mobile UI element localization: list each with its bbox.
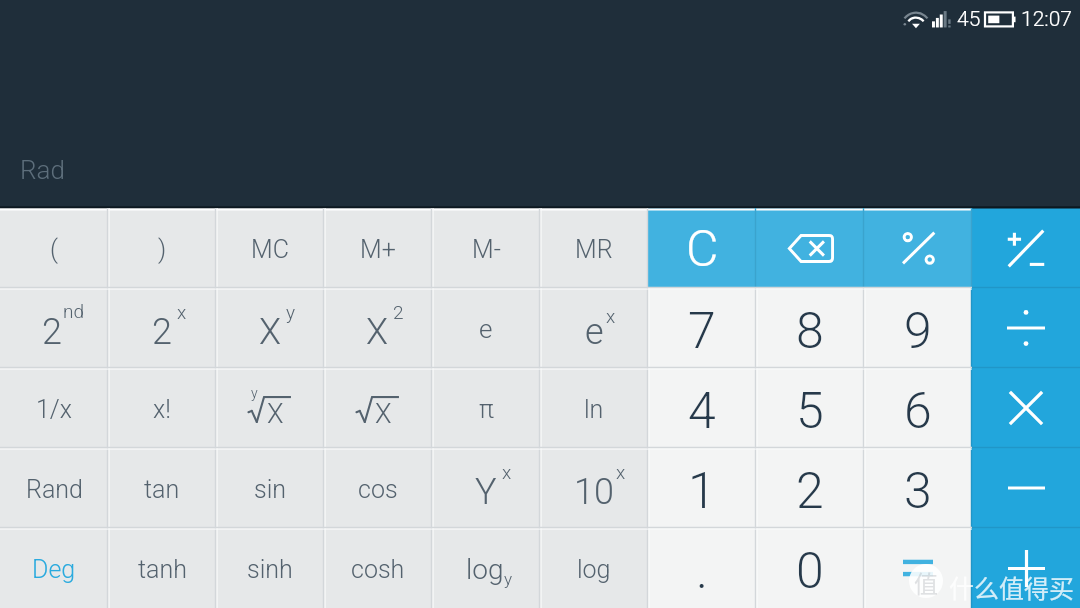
staticText: ln xyxy=(584,395,604,424)
staticText: 8 xyxy=(796,302,824,361)
staticText: cosh xyxy=(351,555,405,584)
button[interactable]: Minus xyxy=(972,448,1080,528)
button[interactable]: 2 xyxy=(756,448,864,528)
staticText: 5 xyxy=(796,382,824,441)
button[interactable]: Plus xyxy=(972,528,1080,608)
staticText: log xyxy=(577,555,611,584)
staticText: 2 xyxy=(796,462,824,521)
staticText: 2 xyxy=(152,311,172,353)
staticText: 9 xyxy=(904,302,932,361)
button[interactable]: e xyxy=(432,288,540,368)
staticText: 0 xyxy=(796,542,824,601)
staticText: X xyxy=(375,398,392,425)
staticText: MC xyxy=(251,235,289,264)
staticText: y xyxy=(251,385,258,401)
button[interactable]: X xyxy=(324,288,432,368)
staticText: Deg xyxy=(32,555,76,584)
button[interactable]: cosh xyxy=(324,528,432,608)
staticText: log xyxy=(466,553,504,586)
button[interactable]: sinh xyxy=(216,528,324,608)
staticText: 7 xyxy=(688,302,716,361)
button[interactable]: 4 xyxy=(648,368,756,448)
staticText: Rad xyxy=(20,155,65,185)
button[interactable]: tanh xyxy=(108,528,216,608)
button[interactable]: ) xyxy=(108,208,216,288)
staticText: y xyxy=(286,301,296,323)
button[interactable]: tan xyxy=(108,448,216,528)
button[interactable]: 2 xyxy=(0,288,108,368)
button[interactable]: log xyxy=(432,528,540,608)
staticText: 1 xyxy=(688,462,716,521)
staticText: 什么值得买 xyxy=(949,569,1075,605)
button[interactable]: Equals xyxy=(864,528,972,608)
button[interactable]: C xyxy=(648,208,756,288)
button[interactable]: Percent xyxy=(864,208,972,288)
button[interactable]: 7 xyxy=(648,288,756,368)
staticText: 值 xyxy=(914,565,938,599)
staticText: 2 xyxy=(42,311,62,353)
button[interactable]: 9 xyxy=(864,288,972,368)
staticText: sinh xyxy=(247,555,293,584)
button[interactable]: Plus minus xyxy=(972,208,1080,288)
button[interactable]: 8 xyxy=(756,288,864,368)
button[interactable]: 1 xyxy=(648,448,756,528)
staticText: π xyxy=(479,395,494,424)
button[interactable]: Backspace xyxy=(756,208,864,288)
staticText: e xyxy=(479,314,493,344)
button[interactable]: Deg xyxy=(0,528,108,608)
button[interactable]: Divide xyxy=(972,288,1080,368)
staticText: 6 xyxy=(904,382,932,441)
staticText: tan xyxy=(144,475,180,504)
staticText: sin xyxy=(254,475,287,504)
staticText: 12:07 xyxy=(1021,7,1073,32)
staticText: x xyxy=(616,461,626,483)
staticText: y xyxy=(504,569,513,589)
button[interactable]: 5 xyxy=(756,368,864,448)
staticText: Rand xyxy=(26,475,83,504)
button[interactable]: 10 xyxy=(540,448,648,528)
button[interactable]: ln xyxy=(540,368,648,448)
button[interactable]: log xyxy=(540,528,648,608)
staticText: X xyxy=(267,398,284,425)
button[interactable]: Square root of X xyxy=(324,368,432,448)
staticText: X xyxy=(259,311,282,353)
button[interactable]: e xyxy=(540,288,648,368)
button[interactable]: M+ xyxy=(324,208,432,288)
button[interactable]: MR xyxy=(540,208,648,288)
button[interactable]: π xyxy=(432,368,540,448)
staticText: e xyxy=(585,311,604,353)
staticText: 4 xyxy=(688,382,716,441)
button[interactable]: sin xyxy=(216,448,324,528)
staticText: M+ xyxy=(360,235,396,264)
button[interactable]: cos xyxy=(324,448,432,528)
button[interactable]: 0 xyxy=(756,528,864,608)
button[interactable]: 3 xyxy=(864,448,972,528)
button[interactable]: x! xyxy=(108,368,216,448)
staticText: nd xyxy=(63,300,85,322)
staticText: C xyxy=(686,220,719,279)
button[interactable]: 1/x xyxy=(0,368,108,448)
button[interactable]: Y xyxy=(432,448,540,528)
button[interactable]: Y-th root of X xyxy=(216,368,324,448)
staticText: tanh xyxy=(138,555,187,584)
staticText: 1/x xyxy=(36,395,72,424)
staticText: x xyxy=(502,461,512,483)
button[interactable]: Rand xyxy=(0,448,108,528)
button[interactable]: 2 xyxy=(108,288,216,368)
button[interactable]: X xyxy=(216,288,324,368)
staticText: X xyxy=(366,311,389,353)
staticText: cos xyxy=(358,475,398,504)
staticText: 10 xyxy=(574,471,614,513)
staticText: 45 xyxy=(957,7,981,32)
staticText: x xyxy=(606,305,616,327)
staticText: ( xyxy=(50,235,58,264)
button[interactable]: . xyxy=(648,528,756,608)
button[interactable]: Multiply xyxy=(972,368,1080,448)
button[interactable]: MC xyxy=(216,208,324,288)
staticText: x! xyxy=(153,395,171,424)
staticText: ) xyxy=(158,235,167,264)
button[interactable]: ( xyxy=(0,208,108,288)
button[interactable]: 6 xyxy=(864,368,972,448)
staticText: . xyxy=(696,542,708,601)
button[interactable]: M- xyxy=(432,208,540,288)
